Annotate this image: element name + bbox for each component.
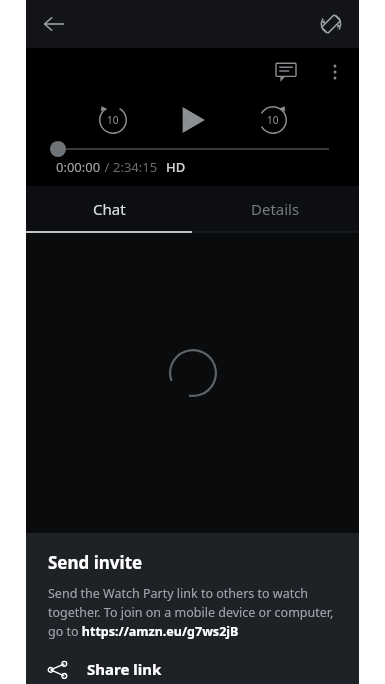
staticText: 2:34:15 [113, 158, 158, 176]
staticText: Share link [87, 659, 162, 679]
staticText: Chat [93, 199, 126, 219]
staticText: HD [166, 158, 186, 176]
button[interactable]: Forward 10 seconds [251, 98, 295, 142]
staticText: Send the Watch Party link to others to w… [48, 585, 339, 640]
staticText: 0:00:00 [56, 158, 101, 176]
button[interactable]: Back [34, 4, 74, 44]
button[interactable]: Screen rotation [311, 4, 351, 44]
button[interactable]: Rewind 10 seconds [91, 98, 135, 142]
button[interactable]: Chat [26, 186, 192, 231]
button[interactable]: Details [192, 186, 359, 231]
button[interactable]: Play [169, 96, 217, 144]
button[interactable]: Subtitles [268, 54, 304, 90]
staticText: 10 [267, 113, 279, 127]
button[interactable]: Share link [48, 654, 339, 684]
staticText: / [101, 158, 113, 176]
staticText: 10 [107, 113, 119, 127]
staticText: Send invite [48, 551, 143, 574]
button[interactable]: More options [317, 54, 353, 90]
staticText: Details [251, 199, 300, 219]
